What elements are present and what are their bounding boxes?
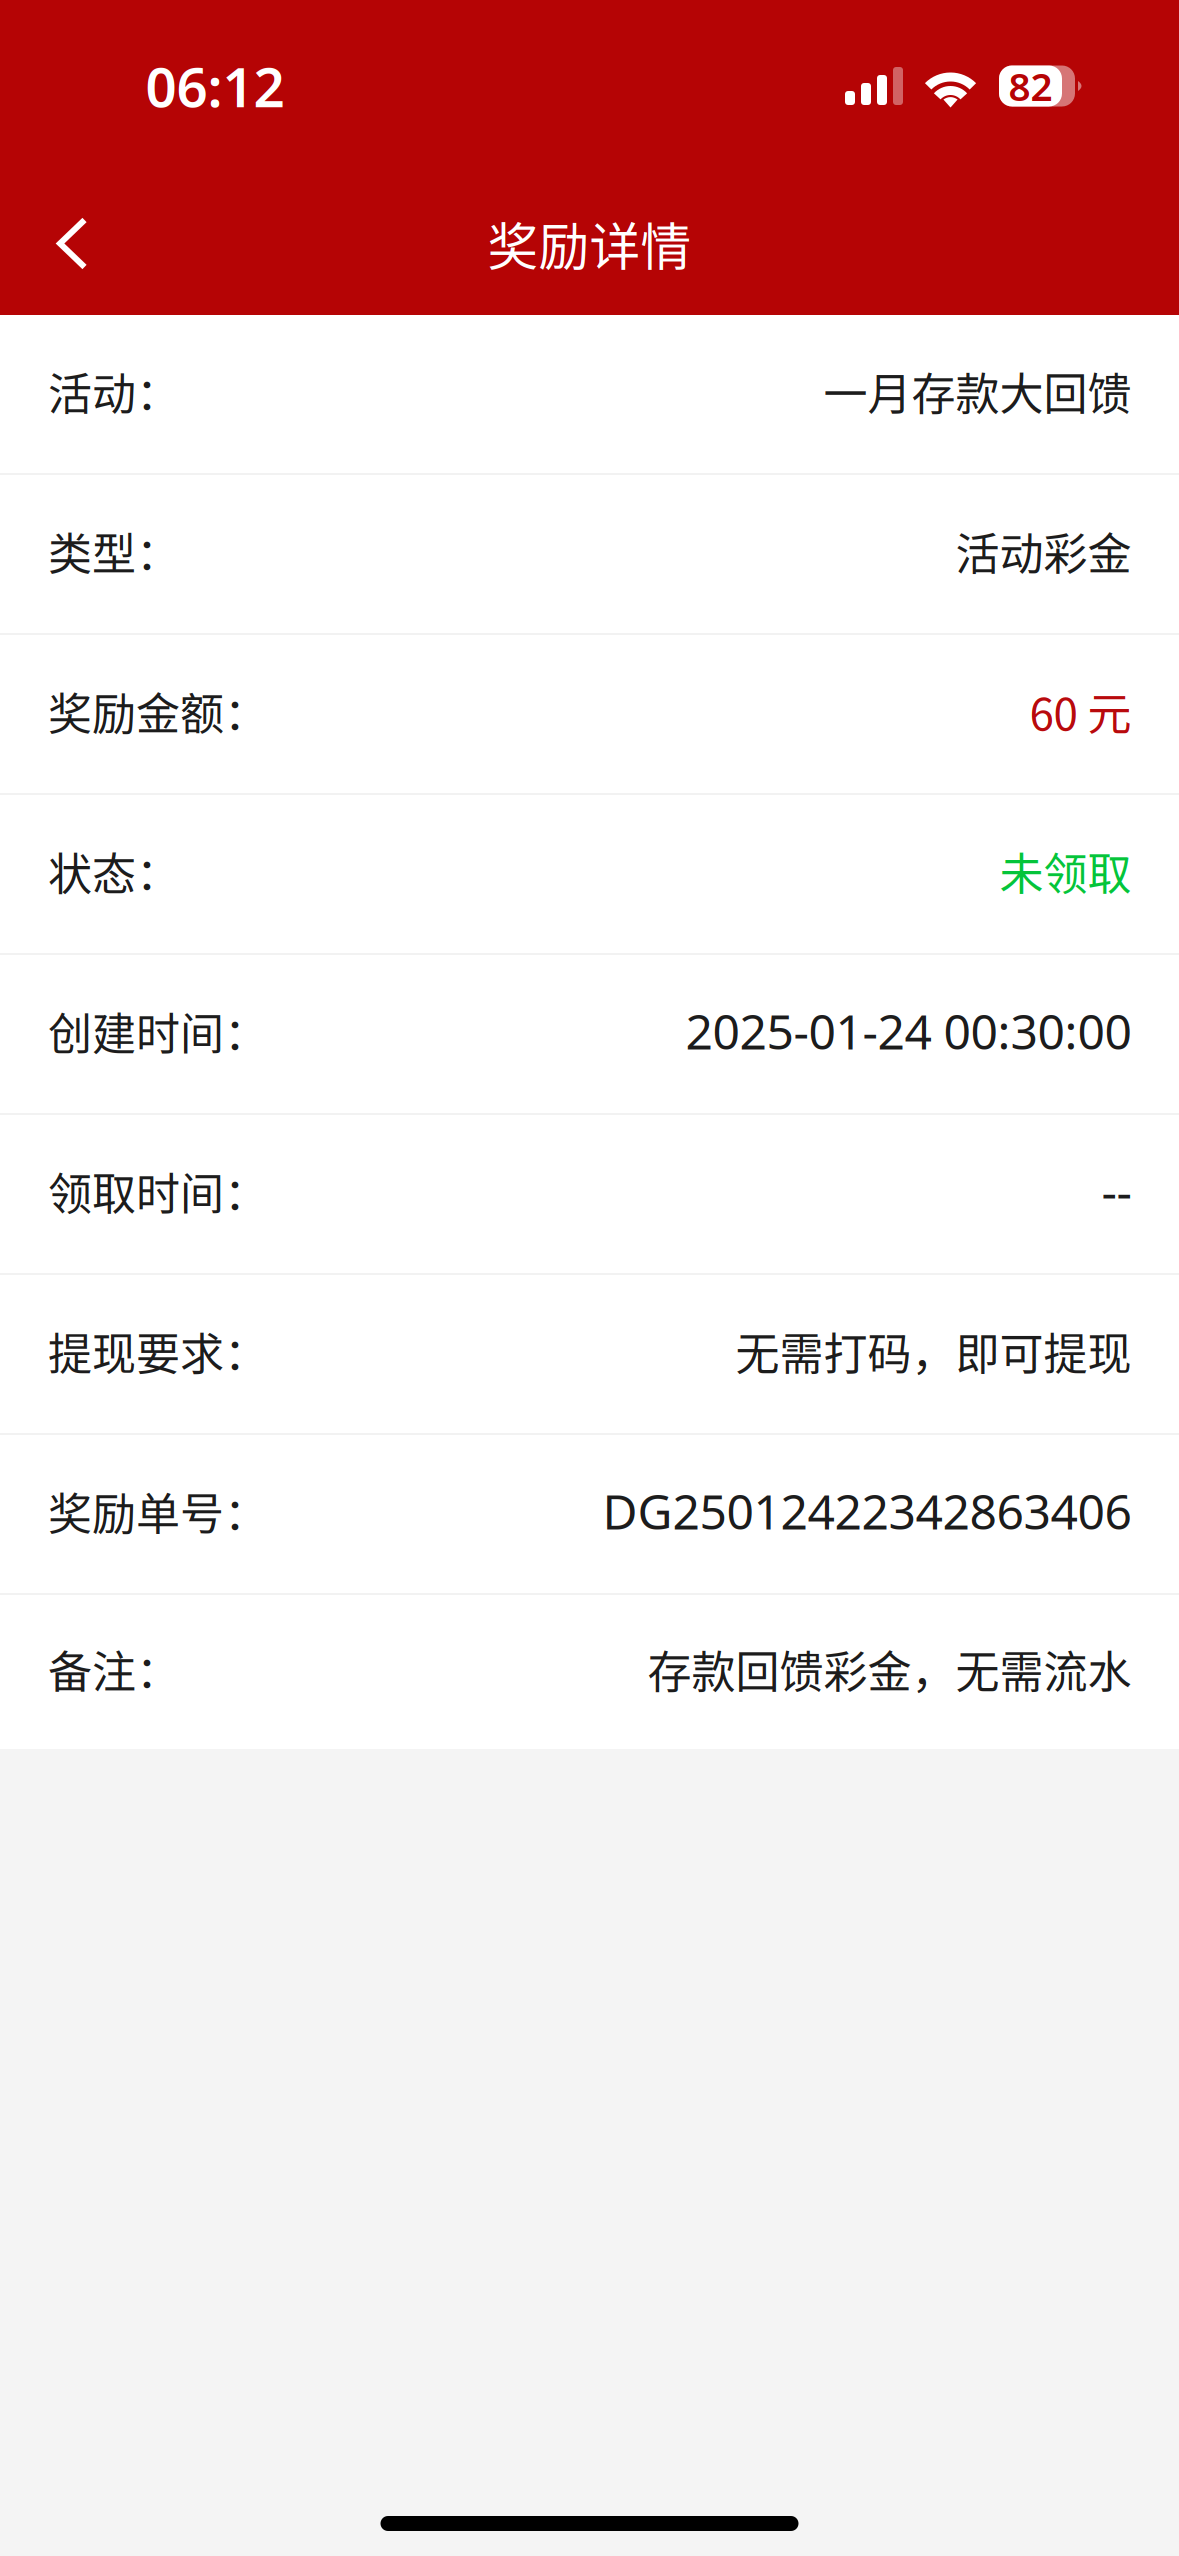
staticText: 类型： xyxy=(48,519,180,583)
staticText: 创建时间： xyxy=(48,999,268,1063)
staticText: 一月存款大回馈 xyxy=(823,359,1131,423)
staticText: 提现要求： xyxy=(48,1319,268,1383)
staticText: 活动彩金 xyxy=(955,519,1131,583)
staticText: 状态： xyxy=(48,839,180,903)
staticText: 60 元 xyxy=(1029,679,1131,743)
button[interactable]: 返回 xyxy=(17,188,127,298)
staticText: 奖励详情 xyxy=(487,207,691,280)
staticText: 活动： xyxy=(48,359,180,423)
staticText: -- xyxy=(1101,1159,1131,1223)
staticText: 领取时间： xyxy=(48,1159,268,1223)
staticText: 存款回馈彩金，无需流水 xyxy=(647,1637,1131,1701)
staticText: 06:12 xyxy=(145,50,284,122)
staticText: 备注： xyxy=(48,1637,180,1701)
staticText: DG25012422342863406 xyxy=(602,1479,1131,1543)
staticText: 无需打码，即可提现 xyxy=(735,1319,1131,1383)
staticText: 奖励金额： xyxy=(48,679,268,743)
staticText: 82 xyxy=(1008,60,1052,112)
staticText: 2025-01-24 00:30:00 xyxy=(685,999,1131,1063)
staticText: 奖励单号： xyxy=(48,1479,268,1543)
staticText: 未领取 xyxy=(999,839,1131,903)
